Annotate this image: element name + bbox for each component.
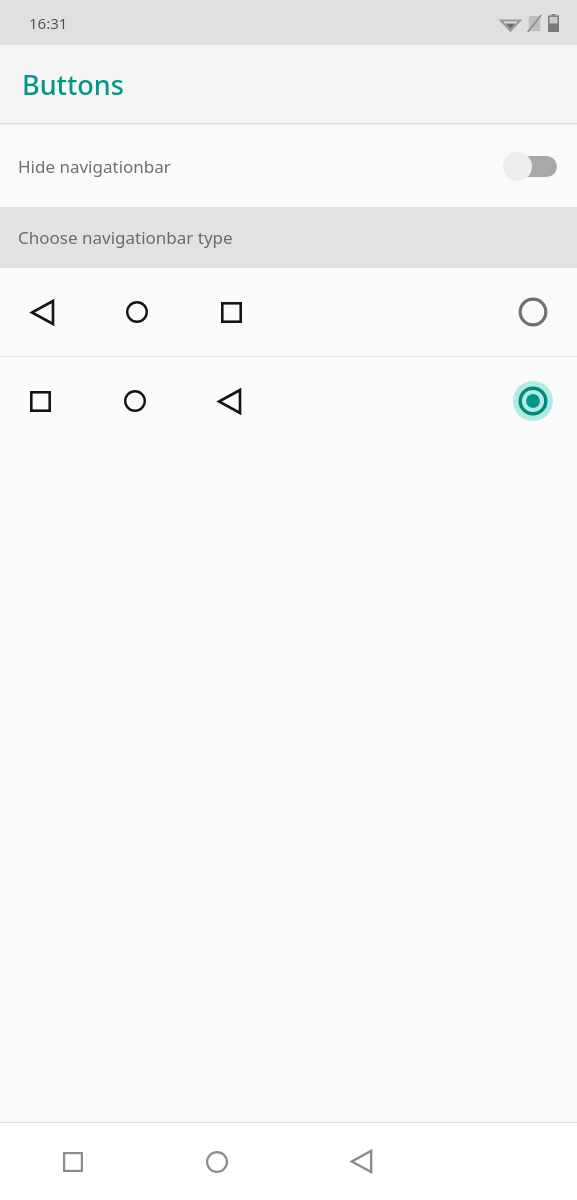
button[interactable]: Navigation bar layout back home recents [0, 268, 577, 356]
button[interactable]: Recents [0, 1123, 145, 1200]
button[interactable]: Back [289, 1123, 433, 1200]
button[interactable]: Home [145, 1123, 289, 1200]
button[interactable]: Navigation bar layout recents home back [0, 357, 577, 445]
staticText: Buttons [22, 66, 124, 103]
staticText: Choose navigationbar type [18, 226, 233, 249]
staticText: 16:31 [29, 13, 68, 33]
button[interactable]: Hide navigationbar [0, 125, 577, 207]
staticText: Hide navigationbar [18, 155, 503, 178]
